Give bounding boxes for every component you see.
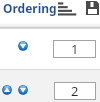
button[interactable]	[57, 1, 77, 17]
staticText: Ordering	[3, 0, 57, 16]
button[interactable]	[18, 41, 28, 51]
button[interactable]	[18, 85, 28, 95]
button[interactable]	[85, 0, 100, 16]
button[interactable]: 1	[53, 40, 96, 58]
button[interactable]	[2, 85, 12, 95]
button[interactable]: 2	[54, 82, 96, 100]
staticText: 1	[71, 40, 79, 58]
staticText: 2	[71, 82, 79, 100]
